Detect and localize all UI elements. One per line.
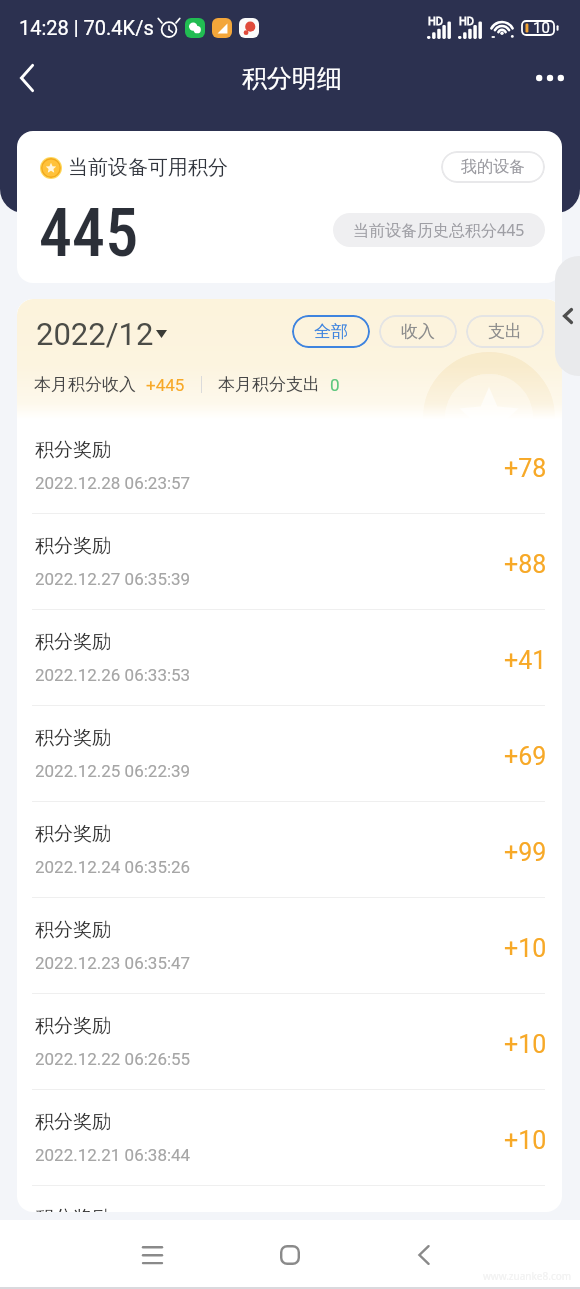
button[interactable]: 积分奖励 — [17, 802, 562, 898]
staticText: 0 — [330, 375, 340, 395]
staticText: 当前设备历史总积分445 — [353, 219, 525, 241]
staticText: 当前设备可用积分 — [68, 155, 228, 180]
staticText: 积分奖励 — [35, 822, 111, 846]
button[interactable]: More options — [526, 54, 574, 102]
staticText: HD — [428, 15, 444, 28]
staticText: +10 — [504, 1126, 547, 1155]
staticText: 积分奖励 — [35, 630, 111, 654]
staticText: 积分奖励 — [35, 1110, 111, 1134]
button[interactable]: Back — [3, 54, 51, 102]
staticText: 2022.12.28 06:23:57 — [35, 473, 191, 493]
button[interactable]: 积分奖励 — [17, 706, 562, 802]
button[interactable]: Back — [394, 1225, 454, 1285]
button[interactable]: 积分奖励 — [17, 1186, 562, 1212]
staticText: +10 — [504, 934, 547, 963]
staticText: 积分奖励 — [35, 1206, 111, 1212]
staticText: 10 — [533, 19, 550, 37]
staticText: 积分明细 — [242, 63, 342, 94]
staticText: 2022.12.24 06:35:26 — [35, 857, 191, 877]
button[interactable]: 全部 — [292, 315, 370, 348]
staticText: +69 — [504, 742, 547, 771]
staticText: 2022.12.23 06:35:47 — [35, 953, 191, 973]
staticText: +445 — [146, 375, 185, 395]
button[interactable]: Home — [260, 1225, 320, 1285]
staticText: 445 — [39, 195, 139, 272]
staticText: HD — [459, 15, 475, 28]
button[interactable]: 收入 — [379, 315, 457, 348]
button[interactable]: 积分奖励 — [17, 1090, 562, 1186]
staticText: +41 — [504, 646, 547, 675]
button[interactable]: Recent apps — [122, 1225, 182, 1285]
button[interactable]: 积分奖励 — [17, 514, 562, 610]
staticText: 本月积分收入 — [34, 374, 136, 395]
button[interactable]: 支出 — [466, 315, 544, 348]
staticText: 2022.12.25 06:22:39 — [35, 761, 191, 781]
staticText: 2022/12 — [36, 316, 154, 352]
staticText: 支出 — [488, 321, 522, 342]
staticText: 收入 — [401, 321, 435, 342]
staticText: 2022.12.21 06:38:44 — [35, 1145, 191, 1165]
staticText: 2022.12.22 06:26:55 — [35, 1049, 191, 1069]
staticText: 2022.12.26 06:33:53 — [35, 665, 191, 685]
staticText: 积分奖励 — [35, 438, 111, 462]
staticText: +10 — [504, 1030, 547, 1059]
button[interactable]: 积分奖励 — [17, 994, 562, 1090]
staticText: 我的设备 — [461, 157, 525, 177]
staticText: +88 — [504, 550, 547, 579]
staticText: 本月积分支出 — [218, 374, 320, 395]
button[interactable]: 2022/12 — [36, 316, 167, 352]
staticText: www.zuanke8.com — [483, 1269, 572, 1283]
staticText: 积分奖励 — [35, 1014, 111, 1038]
staticText: 14:28 | 70.4K/s — [19, 16, 154, 39]
button[interactable]: 我的设备 — [441, 151, 545, 183]
staticText: 积分奖励 — [35, 918, 111, 942]
button[interactable]: Expand side panel — [555, 256, 580, 376]
staticText: 积分奖励 — [35, 726, 111, 750]
staticText: +78 — [504, 454, 547, 483]
staticText: 全部 — [314, 321, 348, 342]
staticText: 2022.12.27 06:35:39 — [35, 569, 191, 589]
button[interactable]: 积分奖励 — [17, 898, 562, 994]
button[interactable]: 积分奖励 — [17, 610, 562, 706]
button[interactable]: 积分奖励 — [17, 418, 562, 514]
staticText: +99 — [504, 838, 547, 867]
staticText: 积分奖励 — [35, 534, 111, 558]
